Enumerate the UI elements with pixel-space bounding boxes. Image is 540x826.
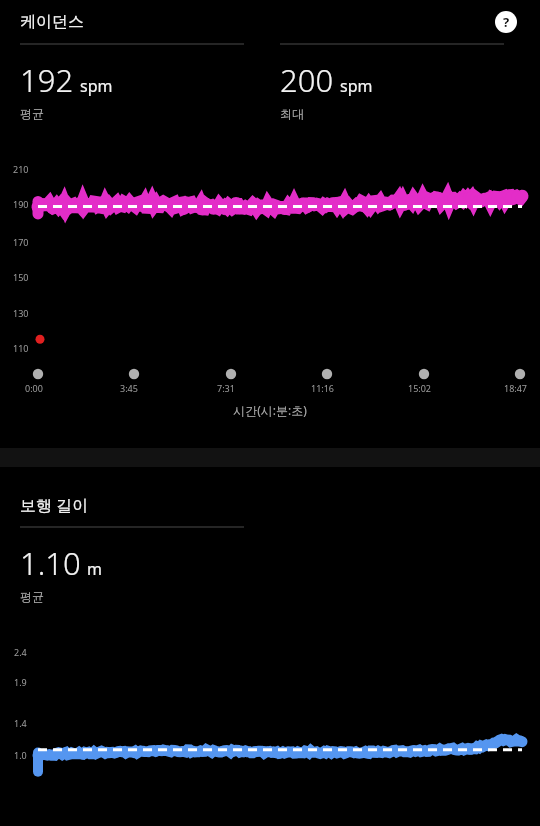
staticText: 1.4 <box>14 717 27 729</box>
staticText: spm <box>340 75 373 97</box>
staticText: 18:47 <box>504 382 528 394</box>
staticText: 15:02 <box>408 382 432 394</box>
staticText: 1.10 <box>20 542 81 584</box>
staticText: 192 <box>20 59 74 101</box>
button[interactable]: 192 <box>20 44 262 121</box>
staticText: 130 <box>13 307 29 319</box>
staticText: 2.4 <box>14 646 27 658</box>
staticText: 11:16 <box>311 382 335 394</box>
button[interactable]: 1.10 <box>20 527 262 604</box>
staticText: 보행 길이 <box>20 494 89 516</box>
staticText: 150 <box>13 271 29 283</box>
staticText: spm <box>80 75 113 97</box>
staticText: 110 <box>13 342 29 354</box>
staticText: 평균 <box>20 589 44 604</box>
staticText: 최대 <box>280 106 304 121</box>
staticText: 190 <box>13 198 29 210</box>
staticText: 3:45 <box>120 382 138 394</box>
button[interactable]: Help <box>493 9 519 35</box>
staticText: 200 <box>280 59 334 101</box>
staticText: 1.0 <box>14 749 27 761</box>
staticText: 케이던스 <box>20 12 84 32</box>
staticText: 0:00 <box>25 382 43 394</box>
staticText: 평균 <box>20 106 44 121</box>
staticText: ? <box>503 13 510 31</box>
staticText: 7:31 <box>217 382 235 394</box>
staticText: m <box>87 558 102 580</box>
staticText: 시간(시:분:초) <box>0 402 540 418</box>
button[interactable]: 200 <box>280 44 522 121</box>
staticText: 170 <box>13 236 29 248</box>
staticText: 1.9 <box>14 676 27 688</box>
staticText: 210 <box>13 163 29 175</box>
